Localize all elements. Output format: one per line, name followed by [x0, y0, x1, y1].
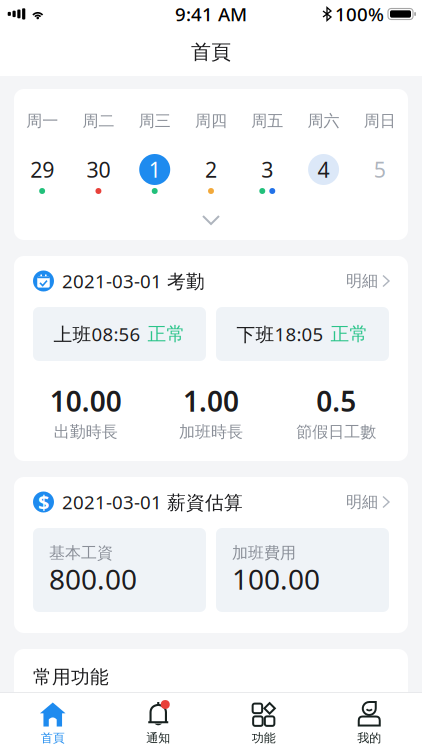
- staticText: 周六: [308, 111, 340, 131]
- staticText: 節假日工數: [296, 422, 376, 442]
- button[interactable]: 功能: [211, 693, 316, 750]
- staticText: 周二: [82, 111, 114, 131]
- staticText: 0.5: [316, 382, 356, 420]
- staticText: 10.00: [50, 382, 122, 420]
- staticText: 加班費用: [232, 543, 296, 563]
- staticText: 加班時長: [179, 422, 243, 442]
- staticText: $: [38, 489, 49, 515]
- staticText: 周四: [195, 111, 227, 131]
- staticText: 2: [205, 155, 217, 184]
- staticText: 首頁: [41, 731, 65, 745]
- button[interactable]: 明細: [346, 270, 389, 292]
- staticText: 9:41 AM: [175, 2, 247, 26]
- button[interactable]: 明細: [346, 491, 389, 513]
- staticText: 3: [261, 155, 273, 184]
- staticText: 周五: [251, 111, 283, 131]
- staticText: 周日: [364, 111, 396, 131]
- staticText: 5: [374, 155, 386, 184]
- button[interactable]: 首頁: [0, 693, 105, 750]
- staticText: 100.00: [232, 560, 320, 598]
- staticText: 常用功能: [33, 665, 109, 688]
- staticText: 正常: [147, 322, 185, 345]
- staticText: 周一: [26, 111, 58, 131]
- staticText: 上班08:56: [53, 322, 140, 346]
- staticText: 我的: [357, 731, 381, 745]
- staticText: 下班18:05: [236, 322, 323, 346]
- staticText: 周三: [139, 111, 171, 131]
- staticText: 功能: [252, 731, 276, 745]
- staticText: 首頁: [191, 40, 231, 64]
- staticText: 正常: [330, 322, 368, 345]
- button[interactable]: 我的: [316, 693, 422, 750]
- staticText: 通知: [146, 731, 170, 745]
- staticText: 30: [86, 155, 110, 184]
- staticText: 2021-03-01 薪資估算: [62, 490, 243, 514]
- button[interactable]: 通知: [105, 693, 211, 750]
- staticText: 1: [149, 155, 161, 184]
- staticText: 基本工資: [49, 543, 113, 563]
- staticText: 出勤時長: [54, 422, 118, 442]
- staticText: 29: [30, 155, 54, 184]
- staticText: 800.00: [49, 560, 137, 598]
- staticText: 2021-03-01 考勤: [62, 269, 205, 293]
- staticText: 1.00: [183, 382, 239, 420]
- button[interactable]: [14, 209, 408, 231]
- staticText: 明細: [346, 492, 378, 512]
- staticText: 100%: [335, 2, 384, 26]
- staticText: 明細: [346, 271, 378, 291]
- staticText: 4: [318, 155, 330, 184]
